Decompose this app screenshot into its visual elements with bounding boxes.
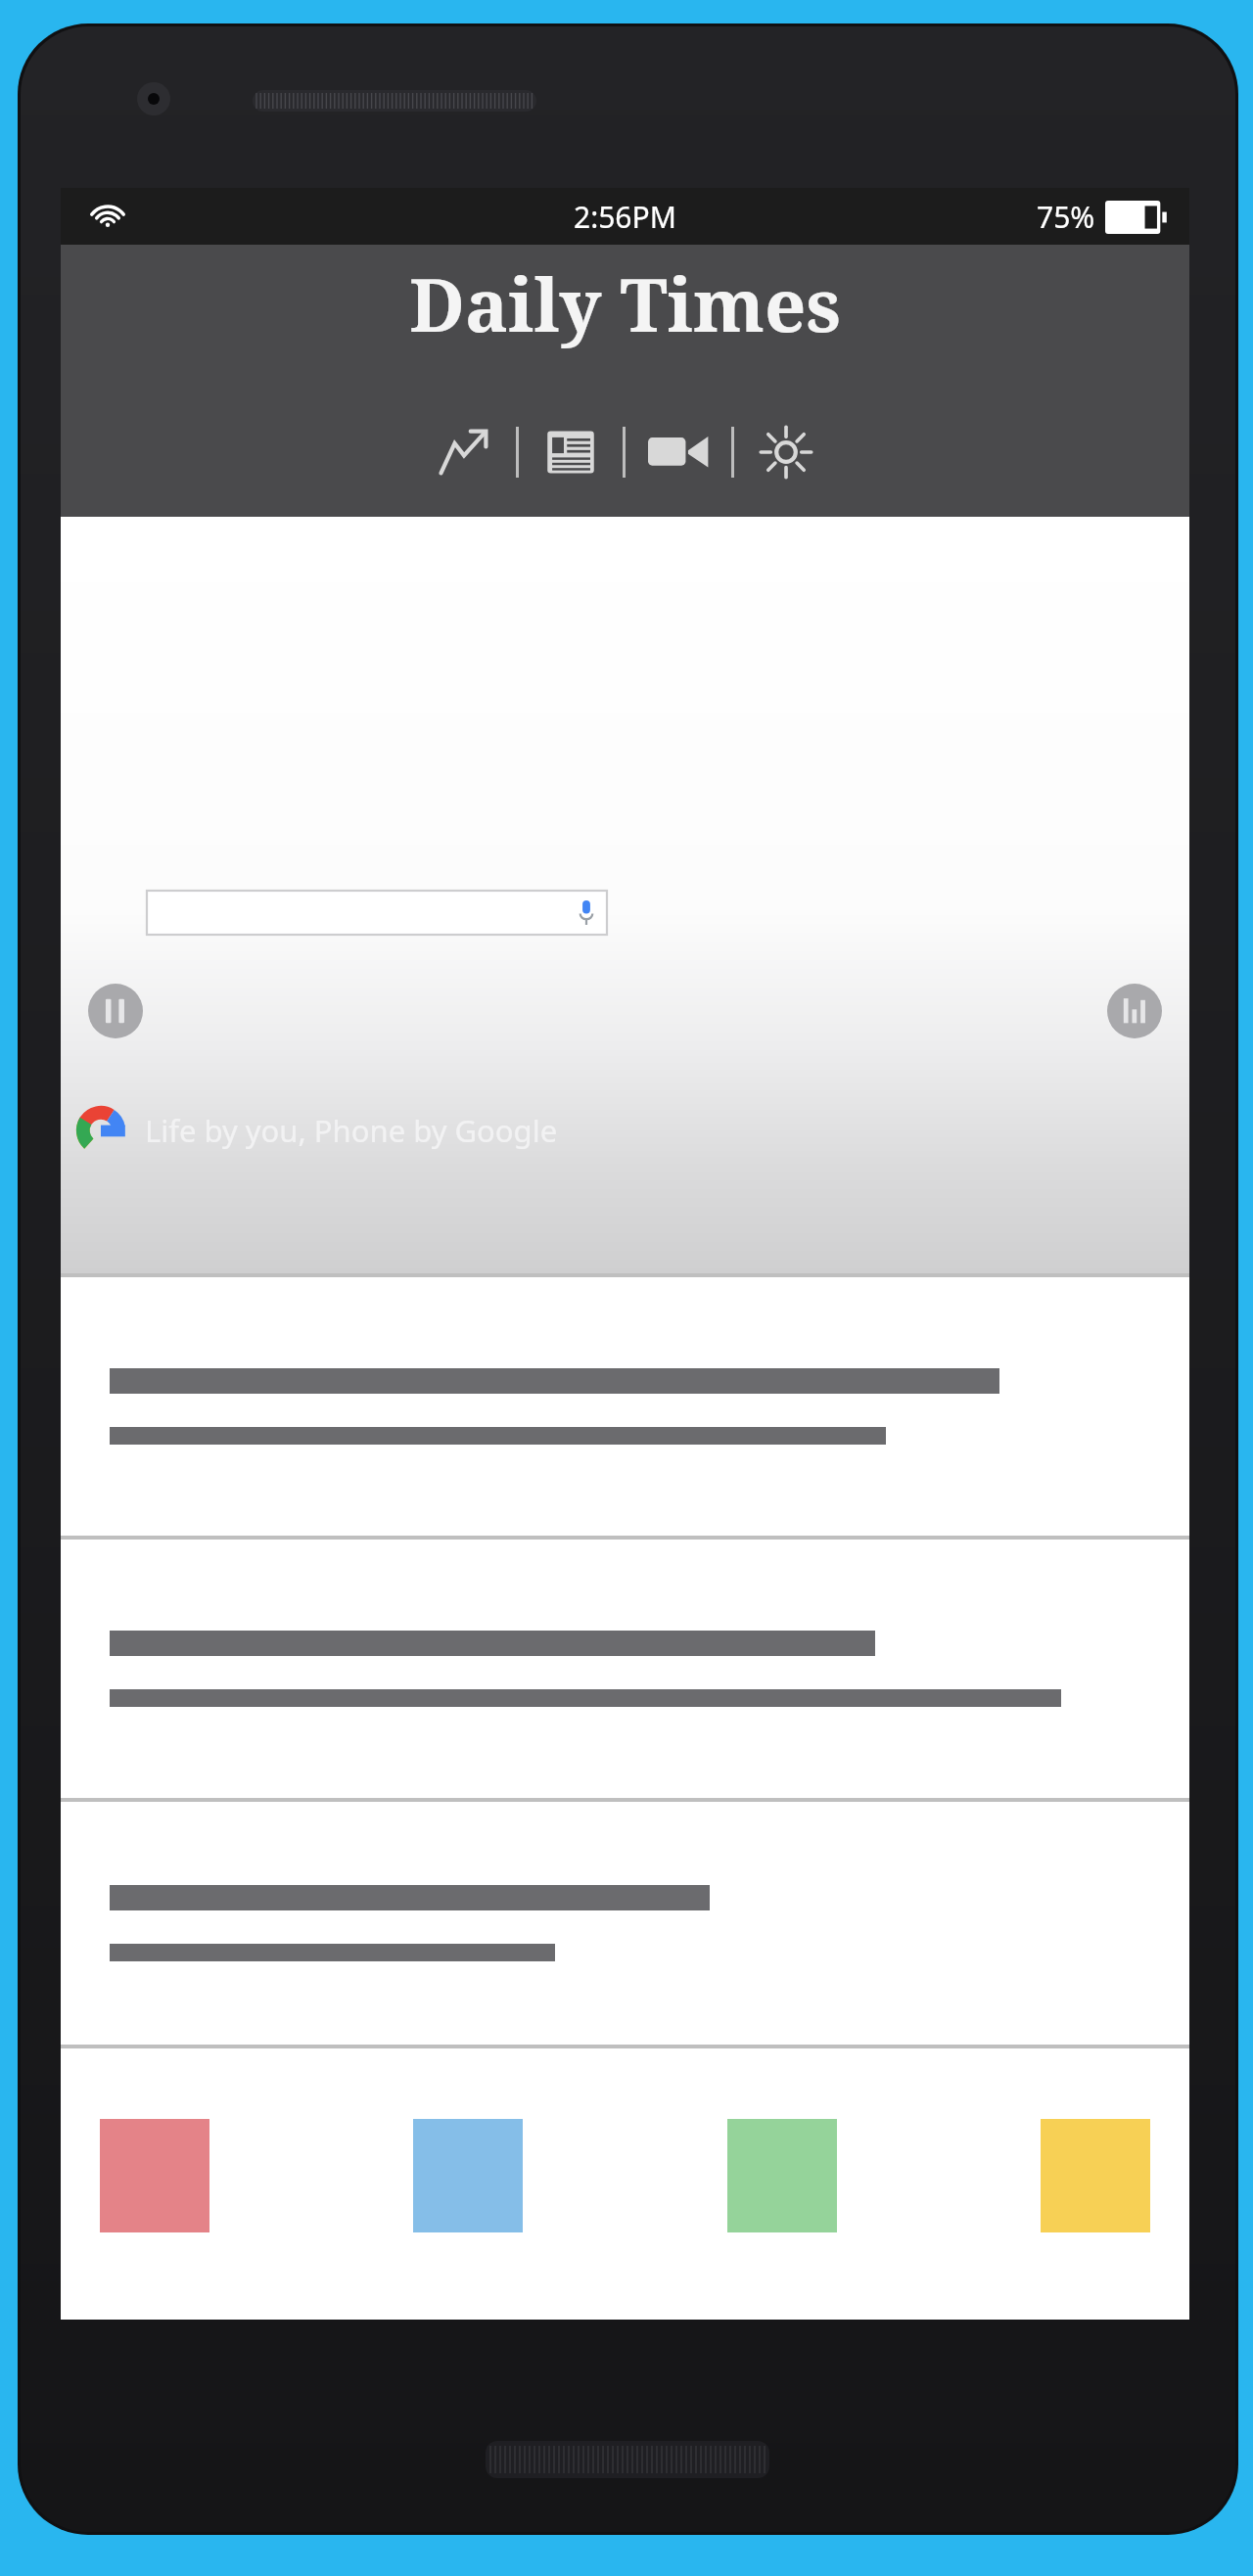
button[interactable]: Statistics bbox=[1107, 984, 1162, 1038]
button[interactable]: Video bbox=[643, 417, 714, 487]
button[interactable]: Pause bbox=[88, 984, 143, 1038]
button[interactable]: Category 3 bbox=[727, 2119, 837, 2232]
staticText: 2:56PM bbox=[574, 197, 676, 237]
button[interactable] bbox=[147, 891, 607, 935]
button[interactable] bbox=[61, 1277, 1189, 1536]
button[interactable]: Life by you, Phone by Google bbox=[74, 1104, 558, 1157]
button[interactable] bbox=[61, 1540, 1189, 1798]
staticText: Daily Times bbox=[409, 254, 841, 353]
button[interactable]: Category 2 bbox=[413, 2119, 523, 2232]
button[interactable] bbox=[61, 1802, 1189, 2045]
button[interactable]: Weather bbox=[752, 418, 820, 486]
staticText: 75% bbox=[1037, 197, 1095, 237]
button[interactable]: Trending bbox=[430, 418, 498, 486]
staticText: Life by you, Phone by Google bbox=[145, 1110, 558, 1151]
button[interactable]: News bbox=[536, 418, 605, 486]
